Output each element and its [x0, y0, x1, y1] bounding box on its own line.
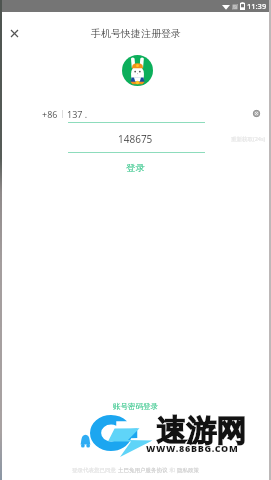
staticText: 137 .	[67, 108, 88, 120]
staticText: 账号密码登录	[113, 402, 158, 411]
staticText: 土巴兔用户服务协议	[118, 467, 168, 474]
staticText: 速游网	[156, 412, 246, 450]
button[interactable]: 重新获取(24s)	[228, 133, 269, 145]
staticText: 11:39	[247, 1, 267, 11]
staticText: 重新获取(24s)	[231, 135, 266, 143]
button[interactable]: 登录	[118, 160, 153, 174]
button[interactable]: Close	[2, 21, 26, 45]
staticText: 登录代表您已同意	[72, 466, 118, 474]
staticText: 登录	[126, 162, 145, 172]
staticText: 隐私政策	[177, 467, 199, 474]
staticText: 148675	[118, 132, 153, 146]
button[interactable]: Clear	[248, 105, 264, 121]
staticText: WWW.86BBG.COM	[146, 442, 239, 454]
staticText: 和	[168, 466, 177, 474]
button[interactable]: 账号密码登录	[107, 400, 164, 413]
staticText: +86	[42, 108, 58, 120]
staticText: 手机号快捷注册登录	[91, 27, 181, 40]
